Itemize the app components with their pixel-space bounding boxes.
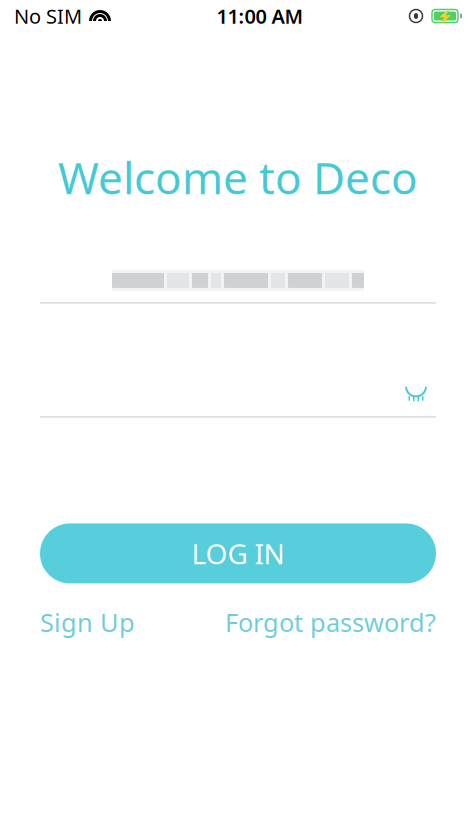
staticText: No SIM [14,3,82,29]
staticText: ⚡ [436,8,453,24]
staticText: 11:00 AM [216,3,303,29]
button[interactable]: Sign Up [40,605,135,639]
staticText: Sign Up [40,605,135,639]
staticText: Forgot password? [225,605,436,639]
staticText: LOG IN [191,535,284,572]
button[interactable]: Forgot password? [225,605,436,639]
staticText: Welcome to Deco [58,148,418,206]
button[interactable]: LOG IN [40,523,436,583]
button[interactable]: Show password [396,378,436,410]
